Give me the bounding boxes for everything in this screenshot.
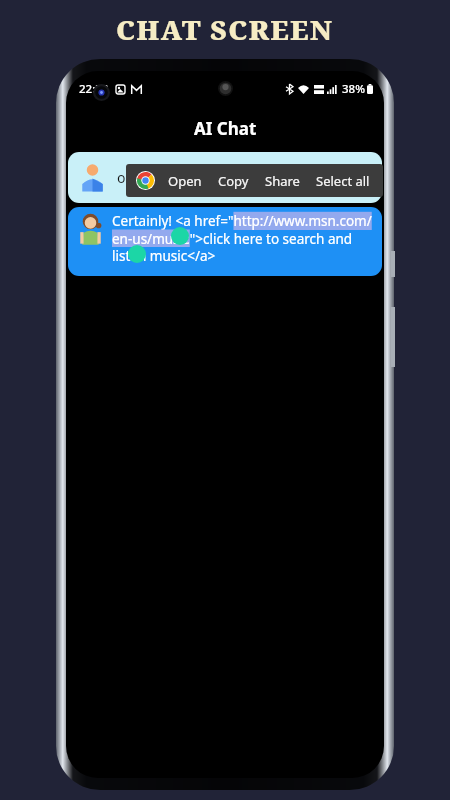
button[interactable]: Share [257, 164, 308, 197]
button[interactable]: Copy [210, 164, 257, 197]
button[interactable]: Select all [308, 164, 378, 197]
staticText: Open [168, 172, 202, 190]
staticText: Copy [218, 172, 249, 190]
staticText: AI Chat [194, 117, 257, 140]
staticText: Share [265, 172, 300, 190]
button[interactable]: Open [160, 164, 210, 197]
staticText: Select all [316, 172, 370, 190]
button[interactable]: Open in Chrome [136, 171, 155, 190]
staticText: 38% [342, 81, 365, 97]
staticText: 22:23 [79, 81, 109, 97]
staticText: CHAT SCREEN [116, 11, 334, 48]
staticText: open music [117, 168, 194, 187]
button[interactable]: Certainly! <a href="http://www.msn.com/e… [68, 207, 382, 276]
button[interactable]: open music [68, 152, 382, 203]
staticText: Certainly! <a href="http://www.msn.com/e… [112, 212, 379, 265]
